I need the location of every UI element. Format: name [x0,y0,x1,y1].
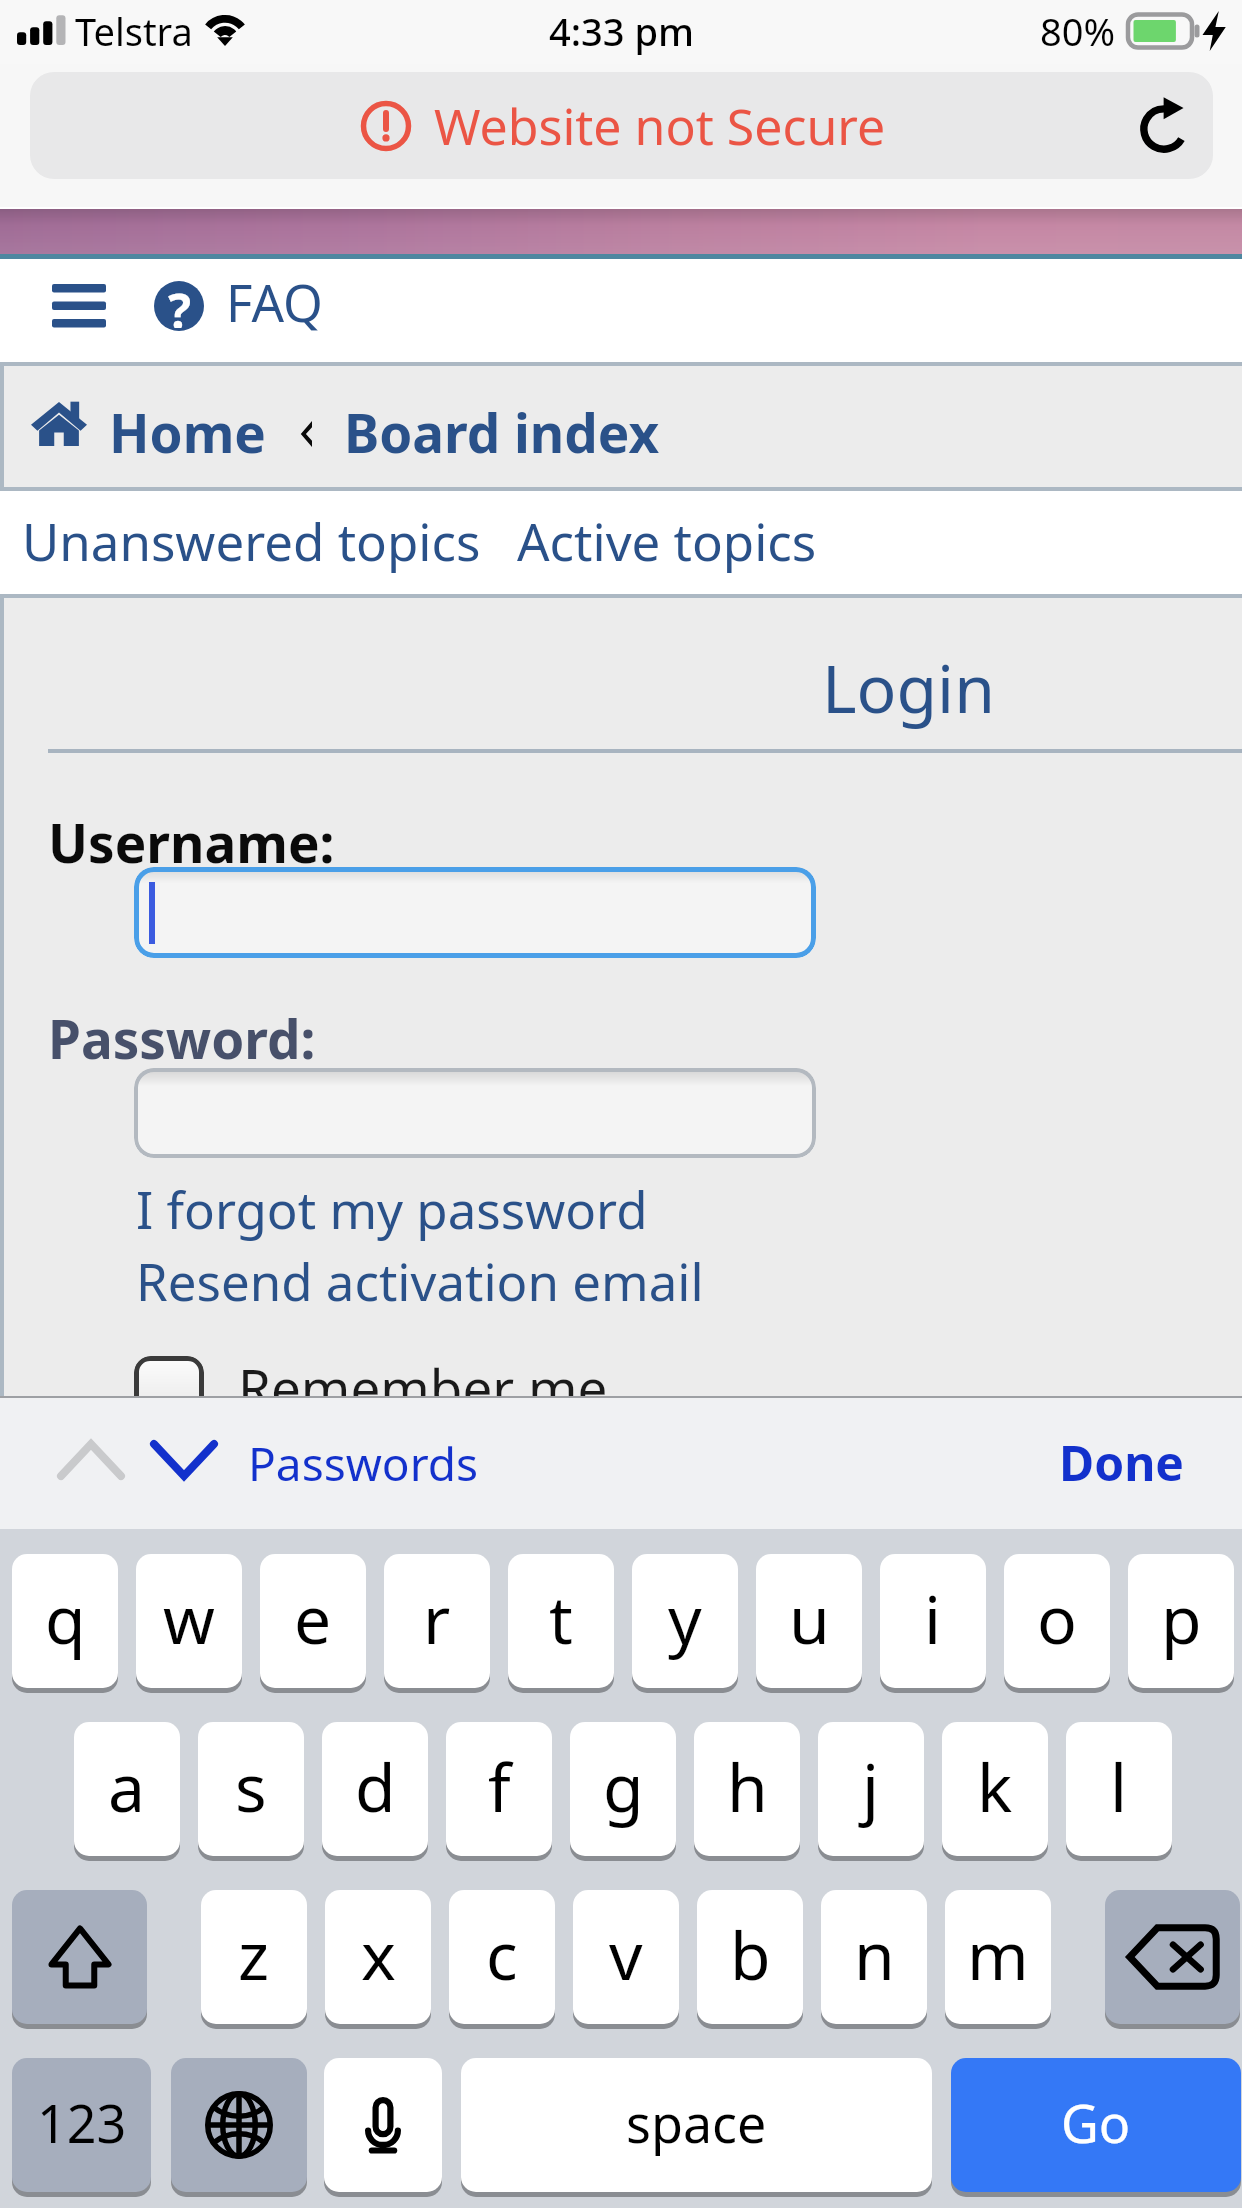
button[interactable]: i [880,1554,986,1688]
staticText: f [488,1741,511,1831]
staticText: 80% [1040,5,1116,57]
button[interactable]: j [818,1722,924,1856]
button[interactable]: Menu [52,284,106,327]
button[interactable] [134,867,816,958]
button[interactable]: ? [154,271,323,340]
staticText: a [108,1741,146,1831]
staticText: l [1110,1741,1128,1831]
button[interactable]: Dictate [324,2058,442,2192]
button[interactable]: Home [31,396,266,468]
staticText: s [235,1741,267,1831]
button[interactable]: h [694,1722,800,1856]
button[interactable]: space [461,2058,932,2192]
button[interactable]: b [697,1890,803,2024]
button[interactable]: y [632,1554,738,1688]
staticText: FAQ [226,267,323,336]
button[interactable] [134,1068,816,1158]
staticText: 4:33 pm [549,5,694,57]
button[interactable]: t [508,1554,614,1688]
button[interactable]: Next field [150,1440,218,1480]
staticText: r [423,1573,451,1663]
staticText: z [238,1909,270,1999]
button[interactable]: Done [1059,1430,1184,1495]
button[interactable]: p [1128,1554,1234,1688]
staticText: t [549,1573,573,1663]
button[interactable]: o [1004,1554,1110,1688]
button[interactable]: n [821,1890,927,2024]
button[interactable]: l [1066,1722,1172,1856]
button[interactable]: Remember me [134,1351,608,1423]
button[interactable]: x [325,1890,431,2024]
staticText: Username: [48,806,335,878]
staticText: j [862,1741,880,1831]
button[interactable]: Website not Secure [30,72,1213,179]
button[interactable]: Unanswered topics [22,506,481,575]
button[interactable]: Change keyboard [171,2058,307,2192]
button[interactable]: f [446,1722,552,1856]
button[interactable]: u [756,1554,862,1688]
staticText: k [977,1741,1013,1831]
staticText: e [294,1573,332,1663]
staticText: Go [1061,2087,1131,2158]
button[interactable]: Board index [344,396,660,468]
button[interactable]: s [198,1722,304,1856]
button[interactable]: z [201,1890,307,2024]
button[interactable]: Reload [1126,88,1202,164]
staticText: d [355,1741,396,1831]
staticText: x [361,1909,396,1999]
staticText: p [1161,1573,1202,1663]
button[interactable]: Go [951,2058,1241,2192]
button[interactable]: d [322,1722,428,1856]
button[interactable]: v [573,1890,679,2024]
button[interactable]: w [136,1554,242,1688]
staticText: Home [109,396,266,468]
button[interactable]: g [570,1722,676,1856]
staticText: Telstra [75,5,193,57]
staticText: y [668,1573,702,1663]
staticText: b [730,1909,771,1999]
staticText: Login [822,642,995,732]
staticText: Remember me [238,1351,608,1423]
staticText: space [626,2087,767,2158]
button[interactable]: Shift [12,1890,147,2024]
button[interactable]: Passwords [248,1432,479,1495]
staticText: i [924,1573,942,1663]
button[interactable]: Resend activation email [136,1246,704,1315]
button[interactable]: c [449,1890,555,2024]
staticText: Password: [48,1002,316,1074]
button[interactable]: q [12,1554,118,1688]
staticText: c [486,1909,518,1999]
button[interactable]: a [74,1722,180,1856]
staticText: u [789,1573,830,1663]
staticText: h [727,1741,768,1831]
button[interactable]: m [945,1890,1051,2024]
button[interactable]: e [260,1554,366,1688]
button[interactable]: r [384,1554,490,1688]
staticText: q [45,1573,86,1663]
button[interactable]: Previous field [57,1440,125,1480]
staticText: v [609,1909,643,1999]
staticText: m [967,1909,1029,1999]
staticText: g [603,1741,644,1831]
button[interactable]: 123 [12,2058,151,2192]
staticText: Website not Secure [434,92,886,160]
button[interactable]: k [942,1722,1048,1856]
staticText: w [163,1573,215,1663]
button[interactable]: Active topics [517,506,817,575]
staticText: 123 [37,2087,127,2158]
button[interactable]: Backspace [1105,1890,1240,2024]
button[interactable]: I forgot my password [136,1174,648,1243]
staticText: o [1037,1573,1077,1663]
staticText: ? [168,278,191,328]
staticText: n [854,1909,895,1999]
